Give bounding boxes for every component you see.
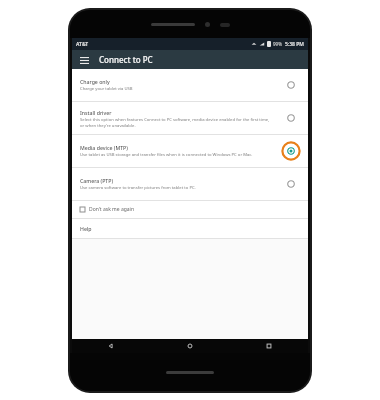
staticText: Connect to PC <box>99 54 153 65</box>
staticText: 5:38 PM <box>285 41 304 48</box>
staticText: Charge your tablet via USB <box>80 86 133 92</box>
staticText: Install driver <box>80 109 112 116</box>
button[interactable]: Don't ask me again <box>72 201 308 218</box>
staticText: 99% <box>273 41 282 47</box>
staticText: AT&T <box>76 41 89 48</box>
button[interactable]: Open navigation menu <box>77 53 91 67</box>
button[interactable]: Help <box>72 219 308 238</box>
staticText: Use camera software to transfer pictures… <box>80 185 196 191</box>
button[interactable]: Install driver <box>72 102 308 134</box>
button[interactable]: Media device (MTP) <box>72 135 308 167</box>
button[interactable]: Camera (PTP) <box>72 168 308 200</box>
staticText: Charge only <box>80 78 110 85</box>
button[interactable]: Charge only <box>72 69 308 101</box>
staticText: Camera (PTP) <box>80 177 114 184</box>
button[interactable]: Recent apps <box>229 339 308 353</box>
button[interactable]: Back <box>72 339 150 353</box>
staticText: Help <box>80 225 92 232</box>
button[interactable]: Home <box>150 339 229 353</box>
staticText: Don't ask me again <box>89 206 134 213</box>
staticText: Use tablet as USB storage and transfer f… <box>80 152 253 158</box>
staticText: Select this option when features Connect… <box>80 117 274 128</box>
staticText: Media device (MTP) <box>80 144 128 151</box>
